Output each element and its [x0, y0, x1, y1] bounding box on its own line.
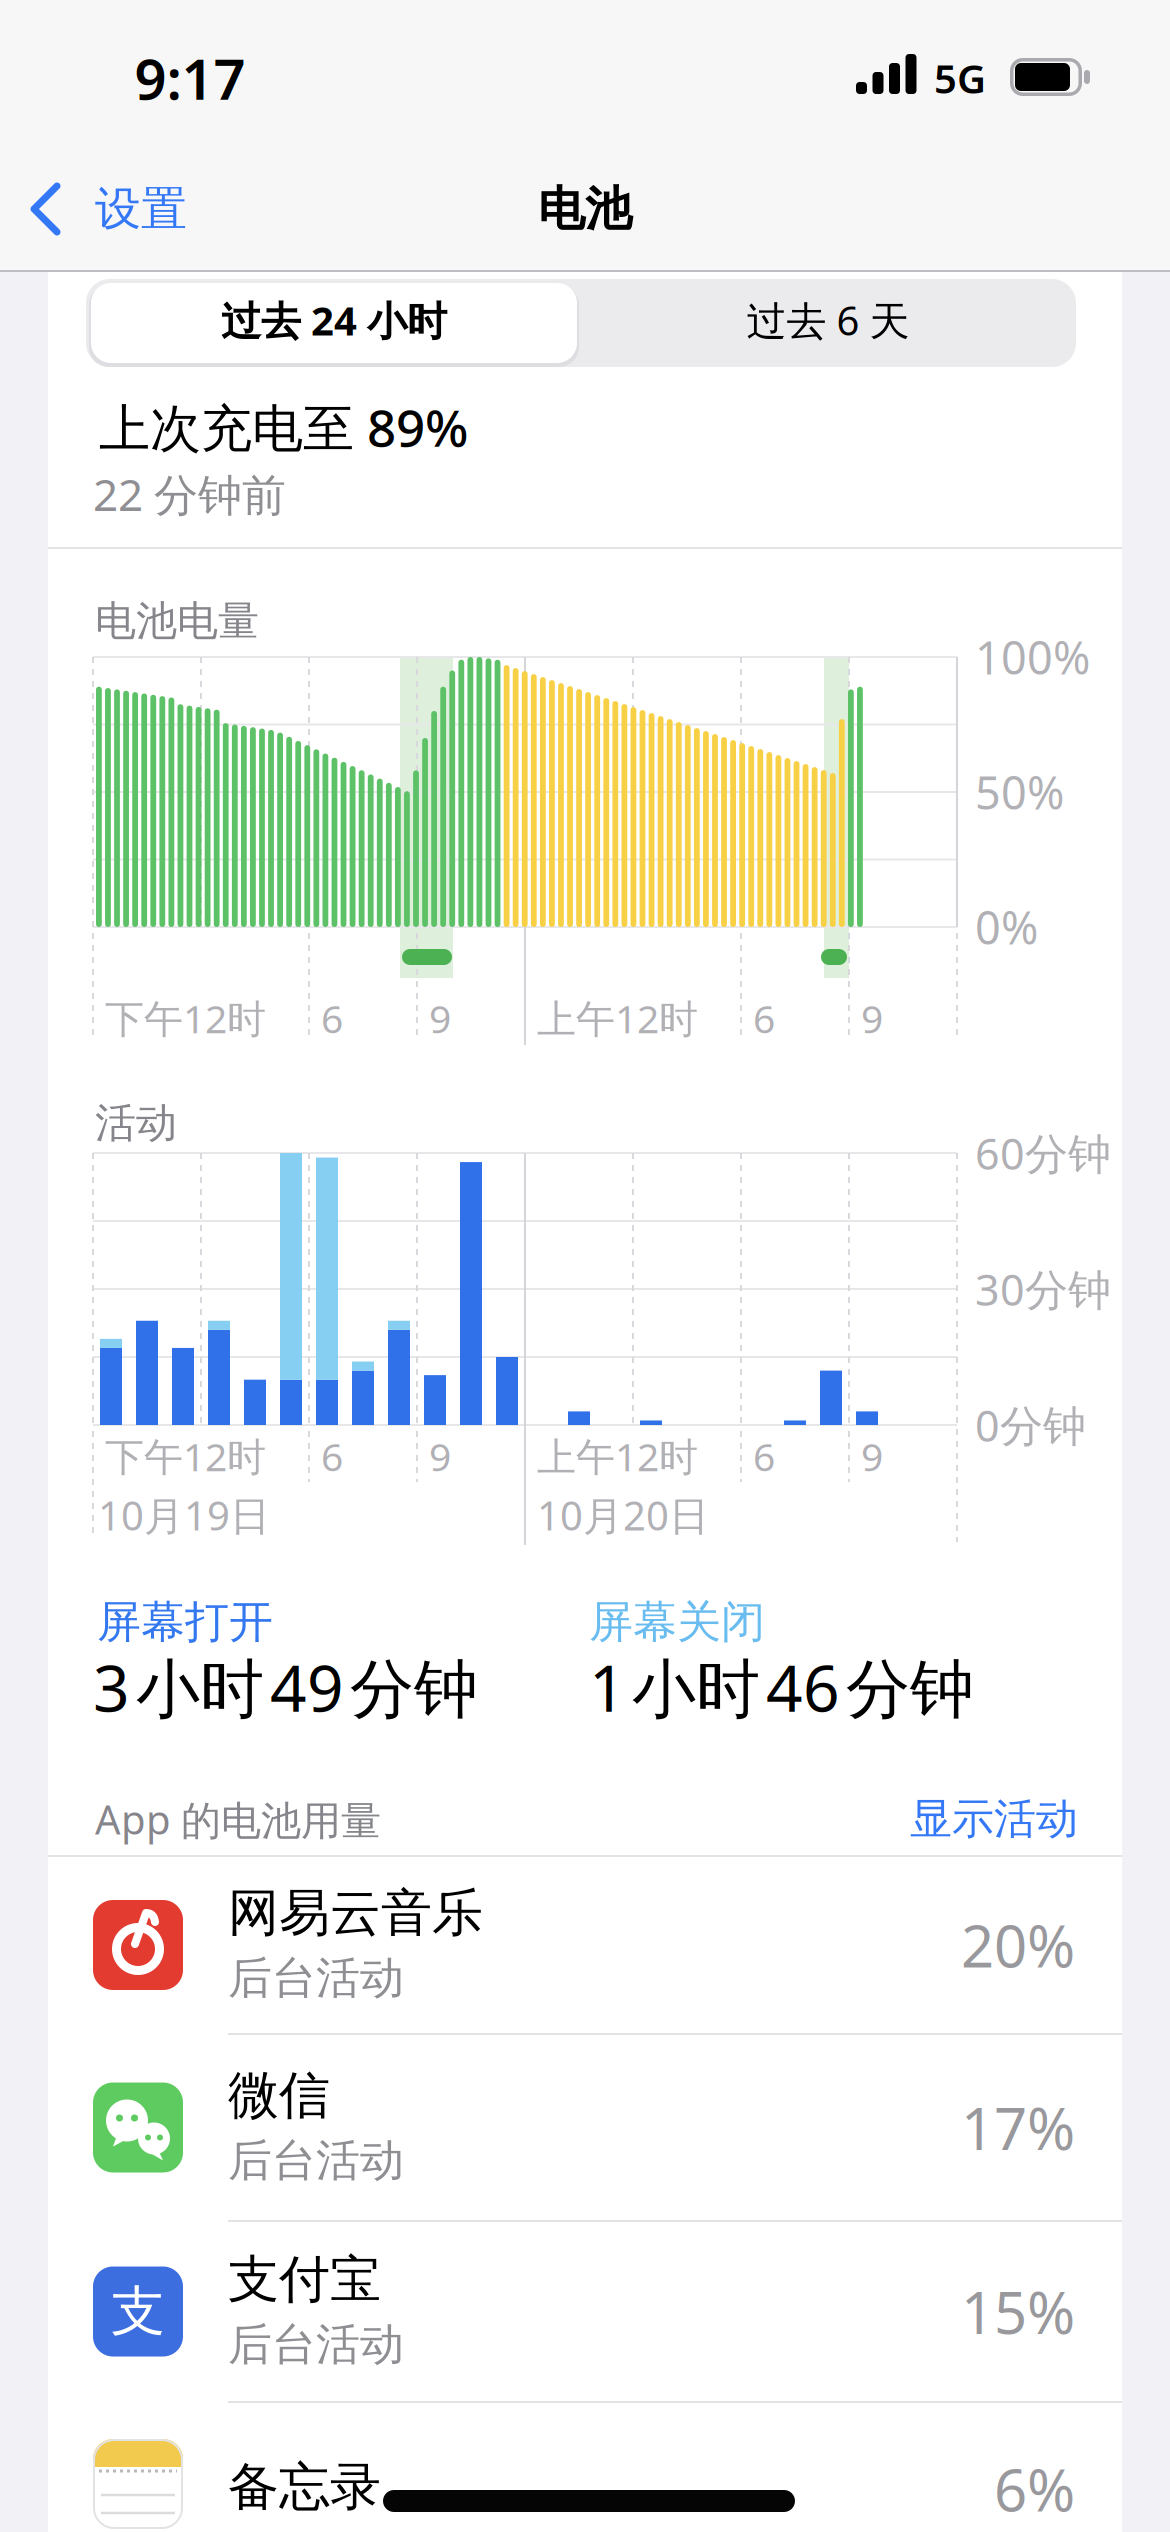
- staticText: 0分钟: [975, 1396, 1086, 1453]
- staticText: 上午12时: [537, 1430, 698, 1482]
- button[interactable]: 备忘录: [48, 2402, 1122, 2532]
- staticText: 上次充电至 89%: [99, 393, 468, 461]
- button[interactable]: 网易云音乐: [48, 1856, 1122, 2034]
- staticText: 9: [861, 1430, 883, 1482]
- staticText: 9:17: [134, 41, 245, 115]
- staticText: 上午12时: [537, 992, 698, 1044]
- staticText: 5G: [934, 51, 986, 104]
- staticText: 0%: [975, 897, 1038, 957]
- staticText: 3 小时 49 分钟: [93, 1644, 478, 1729]
- button[interactable]: 过去 24 小时: [91, 283, 577, 363]
- staticText: 支: [111, 2278, 165, 2345]
- button[interactable]: 支: [48, 2221, 1122, 2402]
- staticText: 备忘录: [228, 2456, 381, 2518]
- button[interactable]: 过去 6 天: [585, 283, 1071, 363]
- staticText: 17%: [961, 2089, 1075, 2166]
- staticText: 电池电量: [95, 596, 259, 646]
- staticText: 60分钟: [975, 1124, 1111, 1181]
- staticText: 1 小时 46 分钟: [589, 1644, 974, 1729]
- staticText: 后台活动: [228, 2133, 404, 2187]
- staticText: 后台活动: [228, 2317, 404, 2371]
- staticText: 过去 24 小时: [221, 293, 447, 346]
- staticText: 6%: [994, 2450, 1075, 2527]
- staticText: 9: [429, 1430, 451, 1482]
- staticText: 屏幕打开: [97, 1595, 273, 1649]
- button[interactable]: 设置: [27, 164, 1170, 2532]
- staticText: 网易云音乐: [228, 1882, 483, 1944]
- button[interactable]: 微信: [48, 2034, 1122, 2221]
- staticText: 22 分钟前: [93, 465, 286, 523]
- staticText: 15%: [961, 2273, 1075, 2350]
- staticText: App 的电池用量: [95, 1792, 381, 1846]
- staticText: 显示活动: [910, 1793, 1078, 1845]
- staticText: 10月20日: [537, 1488, 709, 1541]
- staticText: 屏幕关闭: [589, 1595, 765, 1649]
- staticText: 下午12时: [105, 992, 266, 1044]
- staticText: 9: [429, 992, 451, 1044]
- staticText: 10月19日: [98, 1488, 270, 1541]
- staticText: 活动: [95, 1098, 177, 1148]
- staticText: 6: [321, 992, 343, 1044]
- staticText: 9: [861, 992, 883, 1044]
- staticText: 电池: [538, 180, 632, 238]
- staticText: 下午12时: [105, 1430, 266, 1482]
- staticText: 30分钟: [975, 1260, 1111, 1317]
- staticText: 20%: [961, 1906, 1075, 1983]
- button[interactable]: 显示活动: [798, 1784, 1078, 1854]
- staticText: 过去 6 天: [746, 293, 909, 346]
- staticText: 后台活动: [228, 1951, 404, 2005]
- staticText: 微信: [228, 2064, 330, 2127]
- staticText: 6: [753, 992, 775, 1044]
- staticText: 100%: [975, 627, 1090, 687]
- staticText: 6: [753, 1430, 775, 1482]
- staticText: 6: [321, 1430, 343, 1482]
- staticText: 50%: [975, 762, 1064, 822]
- staticText: 设置: [95, 181, 187, 237]
- staticText: 支付宝: [228, 2248, 381, 2311]
